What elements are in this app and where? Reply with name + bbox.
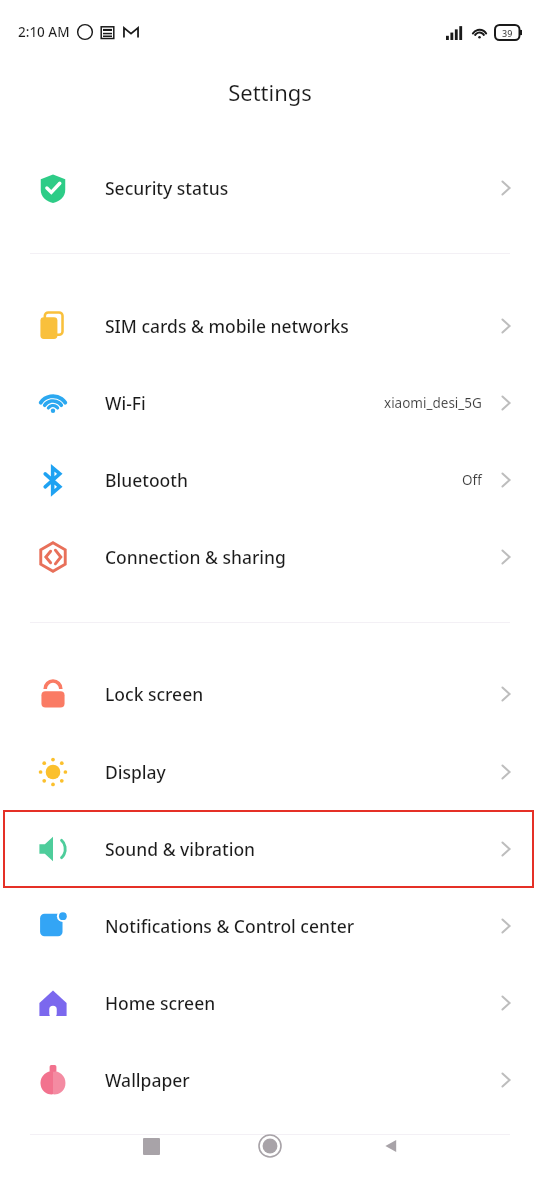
- staticText: Bluetooth: [105, 468, 188, 492]
- button[interactable]: Home screen: [0, 964, 540, 1041]
- button[interactable]: Display: [0, 733, 540, 810]
- button[interactable]: Wallpaper: [0, 1041, 540, 1118]
- button[interactable]: Bluetooth: [0, 441, 540, 518]
- button[interactable]: Notifications & Control center: [0, 887, 540, 964]
- staticText: Home screen: [105, 991, 216, 1015]
- button[interactable]: Sound & vibration: [0, 810, 540, 887]
- staticText: Off: [462, 471, 482, 489]
- staticText: xiaomi_desi_5G: [384, 394, 482, 412]
- staticText: Connection & sharing: [105, 545, 286, 569]
- staticText: Notifications & Control center: [105, 914, 355, 938]
- button[interactable]: Home: [250, 1126, 290, 1166]
- staticText: Wallpaper: [105, 1068, 190, 1092]
- button[interactable]: Back: [371, 1126, 411, 1166]
- staticText: 39: [502, 27, 513, 39]
- button[interactable]: Security status: [0, 149, 540, 226]
- staticText: Security status: [105, 176, 229, 200]
- staticText: 2:10 AM: [18, 23, 70, 41]
- button[interactable]: Connection & sharing: [0, 518, 540, 595]
- staticText: Sound & vibration: [105, 837, 256, 861]
- staticText: SIM cards & mobile networks: [105, 314, 349, 338]
- button[interactable]: Wi-Fi: [0, 364, 540, 441]
- staticText: Settings: [228, 77, 312, 107]
- button[interactable]: Lock screen: [0, 655, 540, 732]
- staticText: Display: [105, 760, 166, 784]
- staticText: Wi-Fi: [105, 391, 146, 415]
- button[interactable]: SIM cards & mobile networks: [0, 287, 540, 364]
- button[interactable]: Recent apps: [131, 1126, 171, 1166]
- staticText: Lock screen: [105, 682, 204, 706]
